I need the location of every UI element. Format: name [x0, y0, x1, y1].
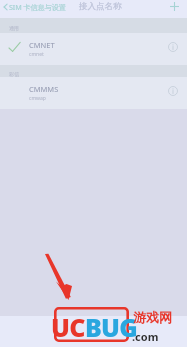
button[interactable]: SIM 卡信息与设置 [0, 2, 68, 12]
staticText: UC [51, 310, 85, 344]
staticText: 彩信 [9, 71, 19, 77]
staticText: CMNET [29, 40, 55, 50]
staticText: cmnet [29, 51, 44, 58]
staticText: cmwap [29, 95, 46, 102]
button[interactable]: CMMMS [0, 77, 187, 109]
staticText: CMMMS [29, 84, 59, 94]
button[interactable]: APN details [158, 77, 187, 109]
staticText: 游戏网 [133, 309, 172, 325]
staticText: .com [132, 329, 159, 344]
staticText: 通用 [9, 25, 19, 31]
staticText: BUG [85, 310, 137, 344]
button[interactable]: APN details [158, 33, 187, 65]
button[interactable]: CMNET [0, 33, 187, 65]
staticText: 接入点名称 [79, 1, 122, 12]
button[interactable]: Add APN [162, 0, 187, 13]
staticText: SIM 卡信息与设置 [9, 2, 66, 12]
